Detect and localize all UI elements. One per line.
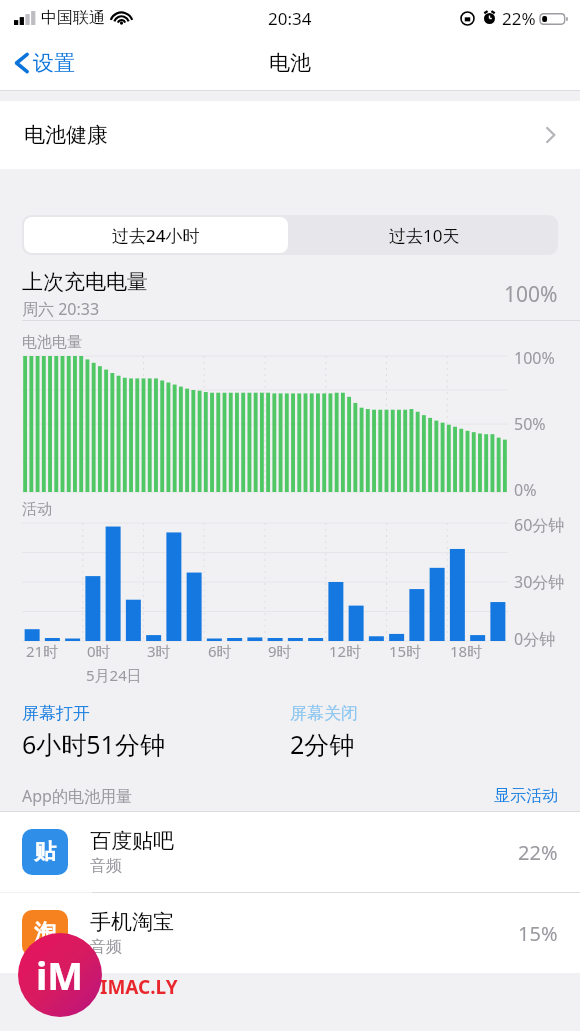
staticText: 22% <box>518 839 558 866</box>
button[interactable]: 贴 <box>0 812 580 892</box>
staticText: IMAC.LY <box>100 974 178 1000</box>
staticText: 15% <box>518 920 558 947</box>
staticText: 60分钟 <box>514 514 565 536</box>
staticText: 18时 <box>450 641 483 661</box>
staticText: 屏幕关闭 <box>290 703 358 724</box>
staticText: 贴 <box>34 838 56 866</box>
staticText: 中国联通 <box>41 8 105 28</box>
button[interactable]: 电池健康 <box>0 101 580 169</box>
staticText: 上次充电电量 <box>22 269 148 295</box>
staticText: 9时 <box>268 641 292 661</box>
staticText: 0分钟 <box>514 628 556 650</box>
staticText: 电池 <box>269 50 311 76</box>
staticText: 音频 <box>90 937 122 957</box>
button[interactable]: 过去24小时 <box>24 217 288 253</box>
staticText: iM <box>36 949 84 1001</box>
staticText: 15时 <box>389 641 422 661</box>
staticText: App的电池用量 <box>22 785 132 807</box>
staticText: 5月24日 <box>86 665 142 685</box>
staticText: 30分钟 <box>514 571 565 593</box>
staticText: 12时 <box>329 641 362 661</box>
staticText: 0时 <box>87 641 111 661</box>
staticText: 活动 <box>22 500 52 519</box>
staticText: 过去24小时 <box>112 224 200 247</box>
staticText: 6小时51分钟 <box>22 727 165 761</box>
staticText: 过去10天 <box>389 224 460 247</box>
staticText: 3时 <box>147 641 171 661</box>
staticText: 电池电量 <box>22 333 82 352</box>
staticText: 50% <box>514 413 546 435</box>
staticText: 设置 <box>33 50 75 76</box>
button[interactable]: 设置 <box>0 44 85 82</box>
staticText: 淘 <box>34 919 56 947</box>
staticText: 音频 <box>90 856 122 876</box>
staticText: 6时 <box>208 641 232 661</box>
staticText: 20:34 <box>268 7 312 30</box>
staticText: 百度贴吧 <box>90 828 174 854</box>
staticText: 0% <box>514 479 537 501</box>
staticText: 屏幕打开 <box>22 703 90 724</box>
staticText: 显示活动 <box>494 786 558 806</box>
staticText: 22% <box>502 7 536 30</box>
staticText: 100% <box>514 347 555 369</box>
button[interactable]: 过去10天 <box>290 215 558 255</box>
staticText: 手机淘宝 <box>90 909 174 935</box>
staticText: 周六 20:33 <box>22 298 100 320</box>
staticText: 电池健康 <box>24 122 108 148</box>
staticText: 2分钟 <box>290 727 355 761</box>
button[interactable]: 显示活动 <box>494 786 558 806</box>
staticText: 100% <box>504 280 558 309</box>
staticText: 21时 <box>26 641 59 661</box>
button[interactable]: 淘 <box>0 893 580 973</box>
